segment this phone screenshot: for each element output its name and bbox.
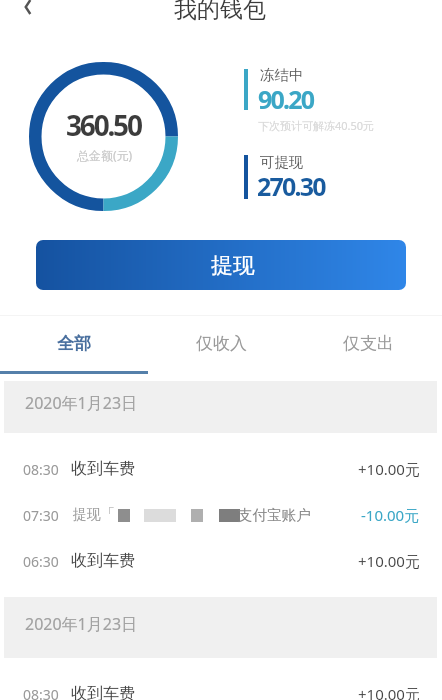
staticText: 90.20 <box>258 82 314 116</box>
staticText: 仅收入 <box>196 333 247 354</box>
staticText: +10.00元 <box>358 684 420 700</box>
staticText: 06:30 <box>23 552 59 571</box>
button[interactable]: 提现 <box>36 240 406 290</box>
staticText: +10.00元 <box>358 551 420 571</box>
staticText: 总金额(元) <box>77 147 133 163</box>
staticText: 我的钱包 <box>174 0 266 24</box>
button[interactable]: 08:30 <box>0 671 442 700</box>
button[interactable]: 08:30 <box>0 446 442 492</box>
staticText: 08:30 <box>23 460 59 479</box>
staticText: 仅支出 <box>343 333 394 354</box>
staticText: 冻结中 <box>260 66 304 84</box>
staticText: 360.50 <box>66 106 141 144</box>
staticText: 收到车费 <box>71 459 135 479</box>
button[interactable]: 全部 <box>0 318 148 339</box>
staticText: 支付宝账户 <box>238 506 311 524</box>
staticText: 收到车费 <box>71 684 135 700</box>
staticText: -10.00元 <box>361 505 420 525</box>
staticText: 提现 <box>211 252 255 280</box>
staticText: 08:30 <box>23 685 59 700</box>
staticText: 2020年1月23日 <box>25 613 138 635</box>
button[interactable]: 仅支出 <box>295 318 442 339</box>
staticText: 下次预计可解冻40.50元 <box>258 118 375 133</box>
button[interactable]: 仅收入 <box>148 318 295 339</box>
staticText: 收到车费 <box>71 551 135 571</box>
staticText: +10.00元 <box>358 459 420 479</box>
staticText: 可提现 <box>260 153 304 171</box>
button[interactable]: Back <box>13 0 43 22</box>
staticText: 07:30 <box>23 506 59 525</box>
button[interactable]: 06:30 <box>0 538 442 584</box>
staticText: 270.30 <box>257 169 325 203</box>
staticText: 2020年1月23日 <box>25 392 138 414</box>
staticText: 提现「 <box>73 506 115 524</box>
button[interactable]: 07:30 <box>0 492 442 538</box>
staticText: 全部 <box>57 333 91 354</box>
